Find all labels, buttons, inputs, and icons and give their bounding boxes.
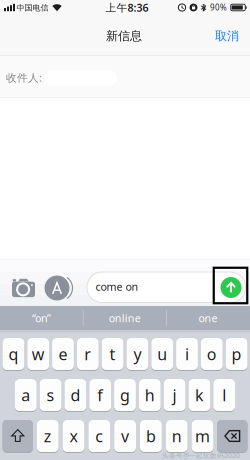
staticText: c (95, 425, 103, 447)
staticText: g (120, 384, 130, 406)
staticText: l (222, 384, 226, 406)
staticText: s (47, 384, 55, 406)
button[interactable]: Message field (87, 272, 245, 302)
staticText: 90% (210, 2, 227, 13)
staticText: r (84, 343, 91, 365)
button[interactable]: p (226, 338, 247, 370)
button[interactable]: “on” (0, 306, 82, 330)
staticText: i (185, 343, 189, 365)
button[interactable]: v (114, 420, 136, 452)
staticText: z (44, 425, 52, 447)
button[interactable]: online (84, 306, 166, 330)
staticText: q (8, 343, 18, 365)
button[interactable]: o (201, 338, 223, 370)
staticText: online (109, 311, 141, 325)
button[interactable]: m (192, 420, 213, 452)
staticText: b (146, 425, 156, 447)
staticText: come on (95, 279, 138, 294)
button[interactable]: k (188, 379, 210, 411)
button[interactable]: s (40, 379, 61, 411)
button[interactable]: b (140, 420, 162, 452)
staticText: 新信息 (106, 29, 142, 43)
staticText: w (32, 343, 45, 365)
button[interactable]: z (37, 420, 59, 452)
staticText: v (121, 425, 129, 447)
button[interactable]: 取消 (209, 24, 245, 48)
button[interactable]: f (89, 379, 111, 411)
staticText: h (145, 384, 155, 406)
staticText: “on” (32, 311, 51, 325)
staticText: 收件人: (6, 70, 42, 85)
staticText: t (110, 343, 116, 365)
staticText: k (195, 384, 204, 406)
staticText: d (70, 384, 80, 406)
staticText: p (232, 343, 242, 365)
staticText: u (157, 343, 167, 365)
button[interactable]: d (64, 379, 86, 411)
button[interactable]: r (77, 338, 99, 370)
staticText: 上午8:36 (105, 0, 148, 15)
button[interactable]: q (2, 338, 24, 370)
button[interactable]: Shift (2, 420, 33, 452)
staticText: x (69, 425, 77, 447)
staticText: o (207, 343, 217, 365)
staticText: n (172, 425, 182, 447)
button[interactable]: Send (220, 277, 241, 298)
staticText: 取消 (215, 29, 239, 43)
button[interactable]: a (15, 379, 37, 411)
staticText: 头条号@一起玩数码2020 (162, 451, 240, 460)
button[interactable]: n (166, 420, 188, 452)
button[interactable]: l (213, 379, 235, 411)
button[interactable]: Camera (11, 278, 35, 297)
button[interactable]: x (63, 420, 84, 452)
button[interactable]: e (52, 338, 74, 370)
button[interactable]: c (88, 420, 110, 452)
button[interactable]: Delete (217, 420, 247, 452)
staticText: one (198, 311, 217, 325)
button[interactable]: g (114, 379, 136, 411)
button[interactable]: w (27, 338, 49, 370)
staticText: m (195, 425, 210, 447)
button[interactable]: h (139, 379, 161, 411)
button[interactable]: u (151, 338, 173, 370)
staticText: a (21, 384, 30, 406)
staticText: y (133, 343, 141, 365)
staticText: e (58, 343, 67, 365)
button[interactable]: one (167, 306, 249, 330)
button[interactable]: y (126, 338, 148, 370)
button[interactable]: iMessage Apps (43, 274, 75, 302)
staticText: f (97, 384, 103, 406)
staticText: j (173, 384, 177, 406)
button[interactable]: t (102, 338, 123, 370)
staticText: 中国电信 (16, 3, 48, 13)
button[interactable]: j (164, 379, 185, 411)
button[interactable]: i (176, 338, 198, 370)
